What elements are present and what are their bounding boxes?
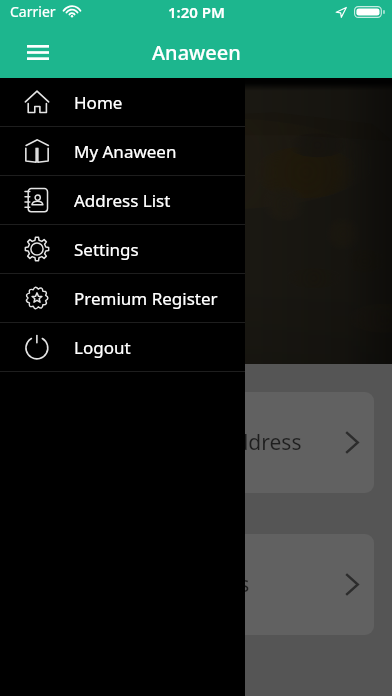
staticText: My Anaween bbox=[74, 140, 177, 163]
staticText: Address List bbox=[74, 189, 171, 212]
staticText: My Anaween Address bbox=[90, 428, 302, 457]
staticText: Carrier bbox=[10, 2, 56, 21]
button[interactable]: My Anaween bbox=[0, 127, 245, 175]
staticText: Logout bbox=[74, 336, 131, 359]
button[interactable]: My Anaween Address bbox=[18, 392, 374, 493]
staticText: Anaweens bbox=[148, 570, 250, 599]
button[interactable]: Anaweens bbox=[18, 534, 374, 635]
button[interactable]: Premium Register bbox=[0, 274, 245, 322]
button[interactable]: Open navigation drawer bbox=[17, 31, 59, 73]
staticText: 1:20 PM bbox=[168, 2, 225, 22]
staticText: Settings bbox=[74, 238, 139, 261]
button[interactable]: Home bbox=[0, 78, 245, 126]
button[interactable]: Settings bbox=[0, 225, 245, 273]
button[interactable]: Address List bbox=[0, 176, 245, 224]
button[interactable]: Logout bbox=[0, 323, 245, 371]
staticText: Anaween bbox=[152, 39, 241, 66]
staticText: Premium Register bbox=[74, 287, 218, 310]
staticText: Home bbox=[74, 91, 123, 114]
